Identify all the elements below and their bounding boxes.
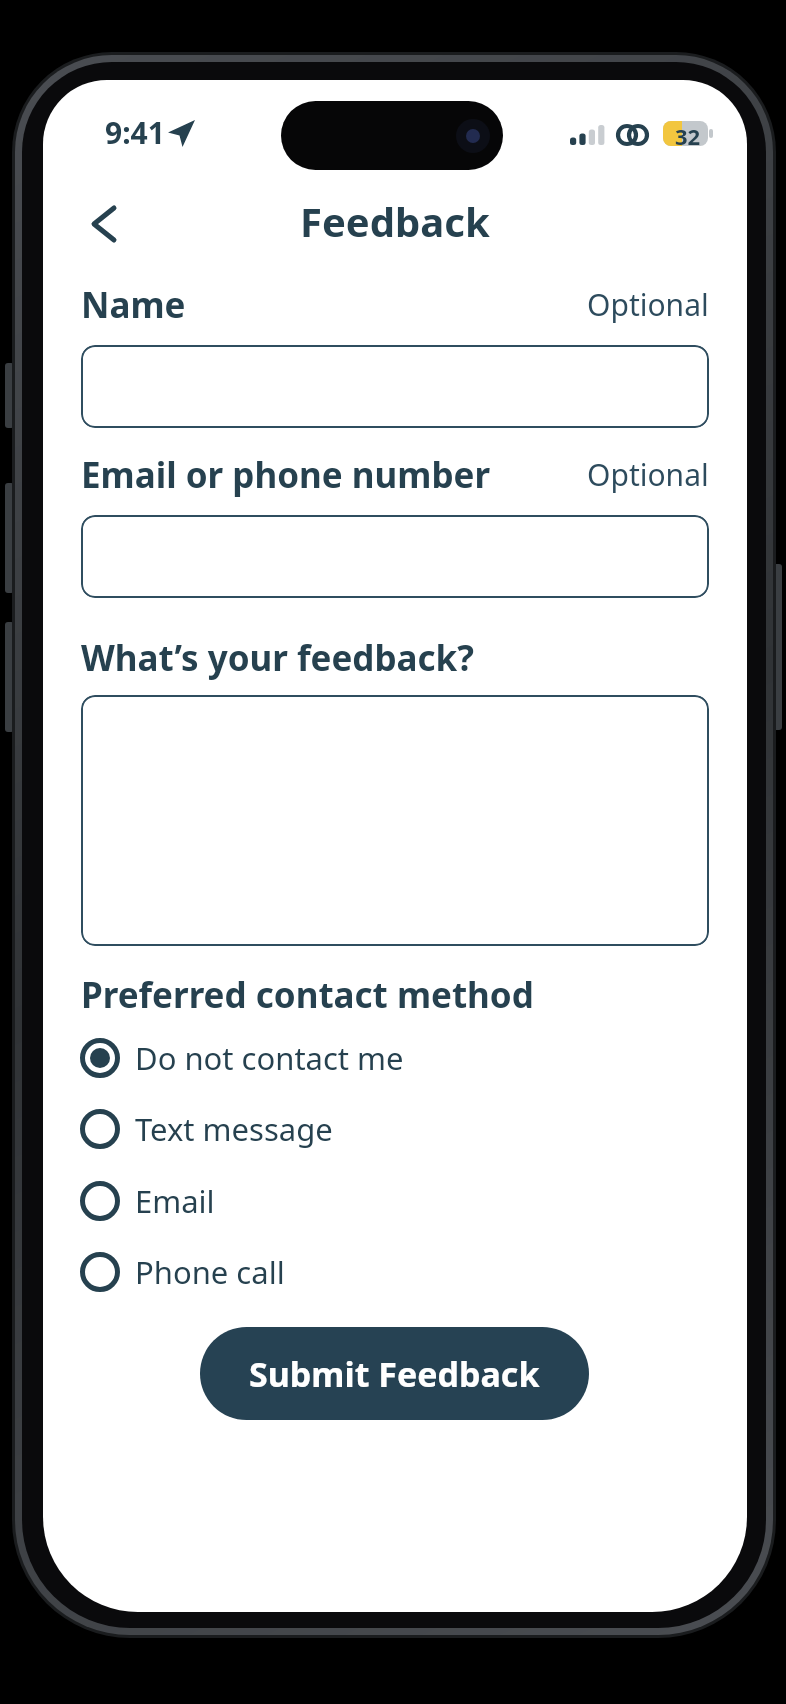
staticText: Submit Feedback [249, 1351, 540, 1397]
button[interactable] [81, 515, 709, 598]
staticText: Preferred contact method [81, 971, 534, 1017]
staticText: What’s your feedback? [81, 634, 475, 680]
staticText: Email or phone number [81, 451, 491, 497]
button[interactable] [81, 695, 709, 946]
staticText: Phone call [135, 1251, 285, 1293]
staticText: Optional [587, 454, 709, 495]
staticText: Text message [135, 1108, 333, 1150]
button[interactable] [81, 345, 709, 428]
staticText: 9:41 [105, 112, 165, 153]
staticText: Email [135, 1180, 215, 1222]
button[interactable]: Phone call [81, 1250, 285, 1294]
staticText: Feedback [300, 194, 490, 248]
button[interactable] [90, 205, 120, 243]
staticText: 32 [675, 121, 701, 146]
button[interactable]: Email [81, 1179, 215, 1223]
staticText: Optional [587, 284, 709, 325]
button[interactable]: Do not contact me [81, 1036, 404, 1080]
staticText: Do not contact me [135, 1037, 404, 1079]
staticText: Name [81, 281, 186, 327]
button[interactable]: Submit Feedback [200, 1327, 589, 1420]
button[interactable]: Text message [81, 1107, 333, 1151]
